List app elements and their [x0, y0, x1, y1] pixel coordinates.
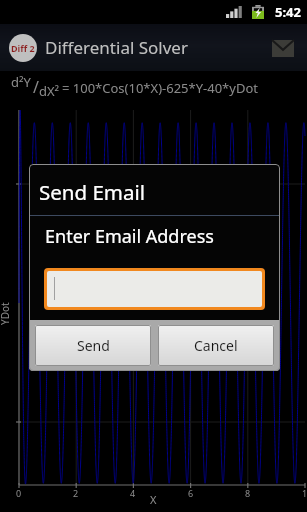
staticText: 5:42	[275, 3, 301, 21]
staticText: Differential Solver	[45, 36, 188, 59]
button[interactable]: Diff 2	[0, 24, 307, 71]
staticText: 10	[302, 487, 307, 499]
staticText: 0	[16, 487, 22, 499]
staticText: 6	[188, 487, 194, 499]
staticText: = 100*Cos(10*X)-625*Y-40*yDot	[62, 79, 258, 97]
button[interactable]: Send	[35, 325, 151, 366]
staticText: Send	[77, 336, 110, 355]
staticText: Cancel	[194, 336, 238, 355]
button[interactable]: Send Email	[263, 28, 303, 68]
button[interactable]	[47, 271, 262, 307]
staticText: Enter Email Address	[45, 224, 214, 249]
staticText: X	[150, 492, 157, 507]
staticText: YDot	[0, 302, 12, 325]
staticText: Send Email	[39, 178, 146, 206]
staticText: dX²	[39, 82, 60, 100]
staticText: /	[33, 76, 39, 98]
staticText: 8	[245, 487, 251, 499]
staticText: 2	[73, 487, 79, 499]
staticText: d²Y	[11, 73, 31, 91]
staticText: Diff 2	[11, 42, 35, 54]
staticText: 4	[130, 487, 136, 499]
button[interactable]: Cancel	[158, 325, 274, 366]
